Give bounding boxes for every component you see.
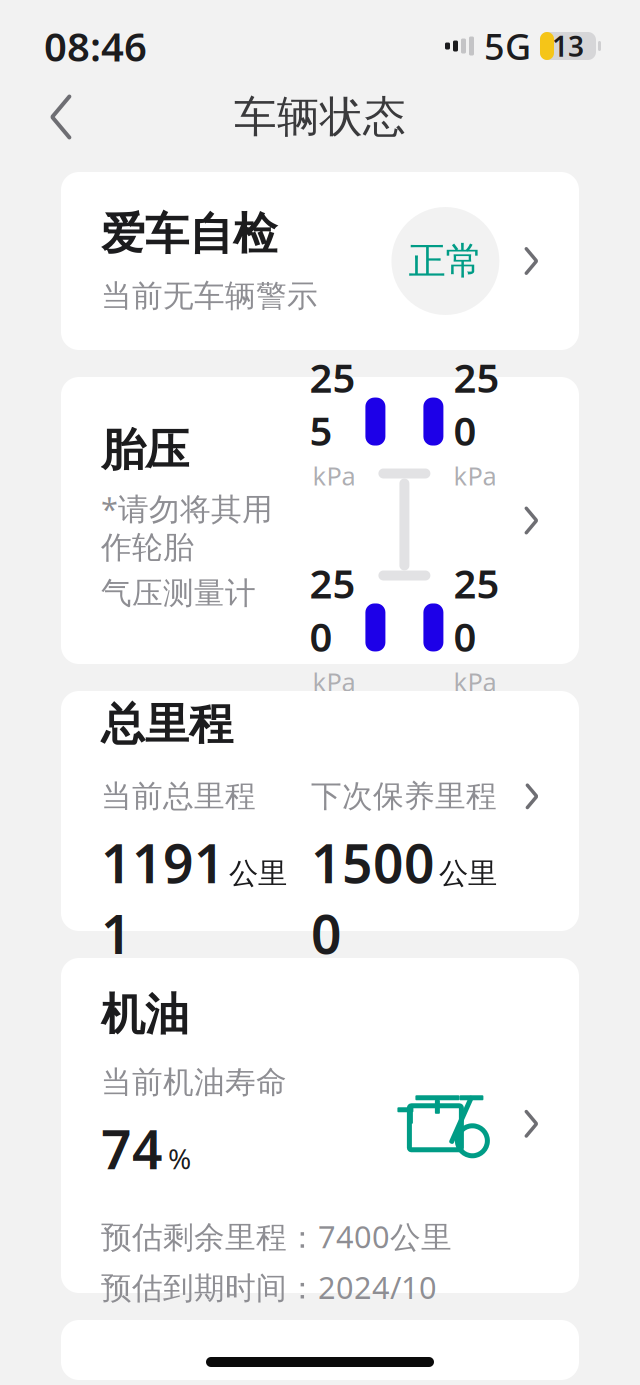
staticText: kPa — [312, 459, 355, 492]
staticText: 5G — [484, 22, 531, 70]
staticText: 车辆状态 — [234, 91, 406, 143]
staticText: 下次保养里程 — [311, 777, 497, 815]
staticText: % — [168, 1140, 191, 1177]
staticText: kPa — [312, 665, 355, 698]
staticText: 正常 — [408, 238, 482, 284]
staticText: 11911 — [101, 827, 225, 969]
staticText: 公里 — [439, 855, 497, 891]
staticText: 08:46 — [44, 19, 147, 72]
staticText: 爱车自检 — [101, 207, 277, 261]
staticText: 250 — [309, 556, 355, 663]
staticText: kPa — [453, 665, 496, 698]
staticText: 总里程 — [101, 697, 233, 751]
staticText: 250 — [453, 351, 499, 457]
staticText: 公里 — [229, 855, 287, 891]
staticText: 气压测量计 — [101, 574, 256, 612]
button[interactable]: 总里程 — [61, 691, 579, 931]
staticText: 74 — [101, 1113, 163, 1184]
staticText: kPa — [453, 459, 496, 492]
staticText: 当前机油寿命 — [101, 1064, 287, 1101]
button[interactable]: 机油 — [61, 958, 579, 1293]
staticText: 当前总里程 — [101, 777, 256, 815]
staticText: 255 — [309, 351, 355, 457]
button[interactable]: 胎压 — [61, 377, 579, 664]
staticText: 当前无车辆警示 — [101, 277, 318, 315]
staticText: *请勿将其用作轮胎 — [101, 488, 273, 566]
button[interactable]: 返回 — [26, 82, 96, 152]
staticText: 15000 — [311, 827, 435, 969]
staticText: 250 — [453, 556, 499, 663]
staticText: 胎压 — [101, 423, 189, 477]
staticText: 预估剩余里程：7400公里 — [101, 1216, 452, 1257]
staticText: 13 — [552, 27, 584, 65]
staticText: 机油 — [101, 987, 189, 1041]
staticText: 预估到期时间：2024/10 — [101, 1267, 437, 1307]
button[interactable]: 爱车自检 — [61, 172, 579, 350]
